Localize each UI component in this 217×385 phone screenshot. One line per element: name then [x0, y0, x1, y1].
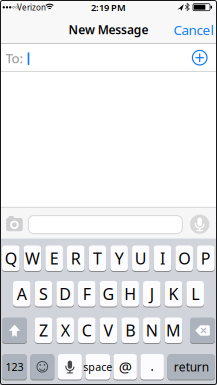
staticText: N [146, 320, 158, 341]
staticText: B [125, 320, 135, 341]
button[interactable]: Q [2, 245, 20, 271]
staticText: C [82, 320, 92, 341]
staticText: F [83, 283, 91, 304]
button[interactable] [191, 49, 208, 66]
button[interactable]: B [121, 317, 139, 343]
button[interactable]: C [78, 317, 96, 343]
button[interactable]: O [175, 245, 193, 271]
button[interactable]: F [78, 280, 96, 307]
staticText: @ [119, 357, 132, 376]
button[interactable]: @ [113, 353, 137, 380]
button[interactable]: H [121, 280, 139, 307]
staticText: G [102, 283, 114, 304]
button[interactable]: P [197, 245, 215, 271]
staticText: T [93, 248, 102, 269]
staticText: I [160, 248, 165, 269]
staticText: U [135, 248, 147, 269]
staticText: return [174, 359, 209, 375]
button[interactable]: T [89, 245, 106, 271]
button[interactable]: S [35, 280, 52, 307]
staticText: R [71, 248, 81, 269]
button[interactable]: R [67, 245, 85, 271]
button[interactable]: space [85, 353, 110, 380]
staticText: E [50, 248, 59, 269]
button[interactable]: I [154, 245, 171, 271]
button[interactable]: Z [35, 317, 52, 343]
staticText: O [178, 248, 190, 269]
button[interactable]: W [24, 245, 41, 271]
staticText: space [83, 360, 112, 374]
button[interactable]: return [167, 353, 215, 380]
staticText: H [124, 283, 136, 304]
staticText: New Message [68, 21, 148, 37]
staticText: M [166, 320, 181, 341]
staticText: X [61, 320, 70, 341]
staticText: L [191, 283, 199, 304]
button[interactable]: K [165, 280, 182, 307]
staticText: D [59, 283, 71, 304]
button[interactable] [190, 214, 209, 234]
staticText: 123 [5, 360, 23, 374]
staticText: To: [5, 49, 23, 67]
staticText: Cancel [173, 21, 213, 39]
button[interactable]: G [100, 280, 117, 307]
staticText: Z [39, 320, 48, 341]
button[interactable]: N [143, 317, 161, 343]
staticText: Q [5, 248, 17, 269]
button[interactable] [6, 216, 23, 231]
button[interactable]: M [165, 317, 182, 343]
button[interactable]: X [56, 317, 74, 343]
staticText: P [201, 248, 211, 269]
staticText: A [17, 283, 27, 304]
button[interactable]: Y [110, 245, 128, 271]
button[interactable] [2, 317, 27, 343]
button[interactable] [58, 353, 82, 380]
button[interactable]: E [45, 245, 63, 271]
button[interactable]: D [56, 280, 74, 307]
button[interactable] [190, 317, 215, 343]
button[interactable]: Cancel [169, 15, 217, 44]
staticText: Y [115, 248, 124, 269]
button[interactable]: J [143, 280, 161, 307]
staticText: 2:19 PM [91, 1, 126, 13]
button[interactable] [140, 353, 164, 380]
staticText: W [25, 248, 40, 269]
staticText: K [168, 283, 178, 304]
button[interactable]: A [13, 280, 31, 307]
staticText: S [39, 283, 48, 304]
staticText: Verizon [17, 2, 46, 13]
button[interactable]: U [132, 245, 150, 271]
staticText: V [103, 320, 113, 341]
button[interactable] [30, 353, 54, 380]
button[interactable]: V [100, 317, 117, 343]
staticText: J [150, 283, 154, 304]
button[interactable]: L [186, 280, 204, 307]
button[interactable]: 123 [2, 353, 27, 380]
